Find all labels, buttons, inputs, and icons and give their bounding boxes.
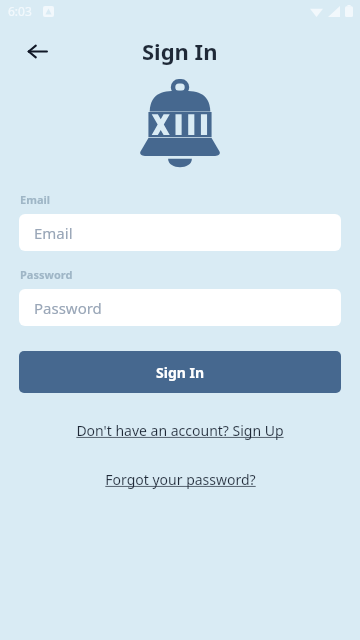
button[interactable]: Back [17,31,57,71]
button[interactable]: Forgot your password? [101,468,260,491]
staticText: Sign In [142,36,218,66]
staticText: Sign In [156,363,205,382]
staticText: Email [34,223,73,243]
staticText: 6:03 [8,3,32,19]
staticText: Password [20,267,73,282]
staticText: Password [34,298,102,318]
button[interactable]: Password [19,289,341,326]
staticText: Forgot your password? [105,470,256,489]
button[interactable]: Don't have an account? Sign Up [72,419,288,442]
staticText: Don't have an account? Sign Up [76,421,284,440]
staticText: Email [20,192,51,207]
button[interactable]: Sign In [19,351,341,393]
button[interactable]: Email [19,214,341,251]
